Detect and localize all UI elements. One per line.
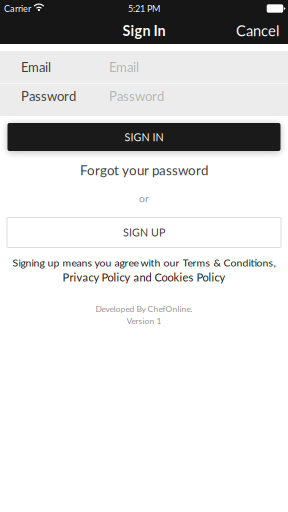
staticText: Forgot your password [80,162,208,178]
staticText: Email [21,59,51,75]
staticText: Cancel [236,22,279,39]
staticText: SIGN IN [124,131,163,143]
staticText: Privacy Policy and Cookies Policy [62,271,225,283]
button[interactable]: Cancel [227,16,288,45]
button[interactable]: Password [0,84,288,116]
staticText: Version 1 [126,316,161,326]
staticText: Sign In [122,22,165,39]
staticText: Password [21,88,76,104]
staticText: SIGN UP [123,226,165,239]
staticText: Carrier [4,3,31,14]
button[interactable]: Forgot your password [70,159,218,181]
staticText: Email [109,59,139,75]
button[interactable]: Email [0,51,288,83]
staticText: Password [109,88,164,104]
staticText: or [139,192,149,204]
button[interactable]: SIGN UP [7,217,281,247]
staticText: Signing up means you agree with our Term… [12,256,275,269]
staticText: Developed By ChefOnline. [95,304,192,314]
staticText: 5:21 PM [128,3,160,14]
button[interactable]: SIGN IN [7,123,280,151]
